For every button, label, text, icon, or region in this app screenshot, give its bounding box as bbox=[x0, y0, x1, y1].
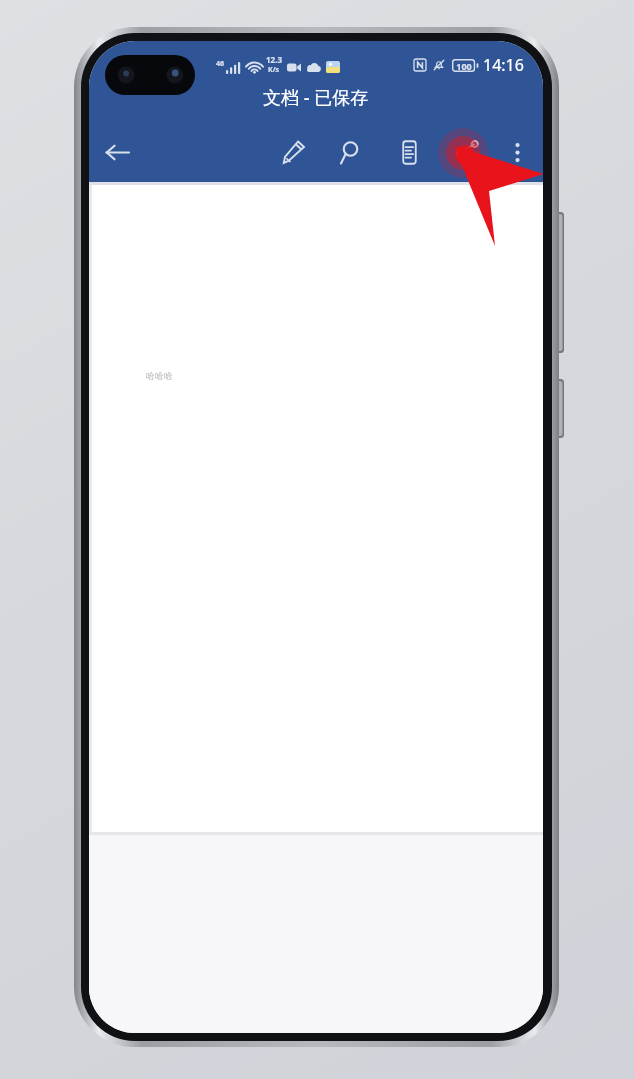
button[interactable]: Share bbox=[445, 130, 489, 174]
button[interactable]: Mobile view bbox=[387, 130, 431, 174]
staticText: 100 bbox=[456, 60, 472, 72]
staticText: 哈哈哈 bbox=[146, 370, 173, 381]
button[interactable]: More options bbox=[495, 130, 539, 174]
staticText: 46 bbox=[216, 59, 225, 69]
button[interactable]: Search bbox=[329, 130, 373, 174]
button[interactable]: Edit bbox=[271, 130, 315, 174]
staticText: 文档 - 已保存 bbox=[263, 85, 369, 110]
staticText: K/s bbox=[268, 65, 280, 75]
staticText: 14:16 bbox=[483, 54, 524, 76]
staticText: 12.3 bbox=[266, 54, 282, 65]
button[interactable]: Back bbox=[95, 130, 139, 174]
